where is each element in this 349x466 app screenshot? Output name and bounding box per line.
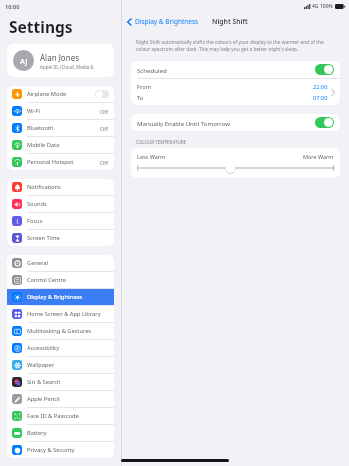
staticText: AJ	[20, 56, 28, 66]
staticText: Wallpaper	[27, 361, 55, 369]
button[interactable]: Bluetooth	[7, 120, 114, 136]
staticText: 22:00	[313, 83, 328, 91]
staticText: Home Screen & App Library	[27, 310, 101, 318]
staticText: Mobile Data	[27, 141, 60, 149]
button[interactable]: Accessibility	[7, 340, 114, 356]
button[interactable]: Toggle	[95, 90, 109, 98]
staticText: Less Warm	[137, 153, 166, 160]
staticText: Privacy & Security	[27, 446, 75, 454]
other: Back	[127, 18, 132, 26]
staticText: Face ID & Passcode	[27, 412, 79, 420]
staticText: Off	[100, 159, 109, 166]
button[interactable]: Personal Hotspot	[7, 154, 114, 170]
staticText: Display & Brightness	[135, 17, 199, 26]
staticText: Multitasking & Gestures	[27, 327, 92, 335]
staticText: 100%	[320, 3, 333, 10]
staticText: Night Shift	[212, 17, 248, 26]
button[interactable]: Mobile Data	[7, 137, 114, 153]
button[interactable]: Home Screen & App Library	[7, 306, 114, 322]
staticText: Display & Brightness	[27, 293, 83, 301]
button[interactable]: Sounds	[7, 196, 114, 212]
button[interactable]: Siri & Search	[7, 374, 114, 390]
staticText: Accessibility	[27, 344, 60, 352]
staticText: 10:00	[5, 3, 20, 11]
staticText: General	[27, 259, 48, 267]
button[interactable]: Back	[127, 17, 199, 26]
staticText: Settings	[9, 16, 73, 37]
staticText: Control Centre	[27, 276, 67, 284]
button[interactable]: Airplane Mode	[7, 86, 114, 102]
staticText: Bluetooth	[27, 124, 54, 132]
staticText: Alan Jones	[40, 52, 79, 63]
button[interactable]: Colour temperature slider	[137, 163, 334, 173]
button[interactable]: Toggle	[315, 117, 334, 128]
staticText: Sounds	[27, 200, 47, 208]
staticText: To	[137, 94, 144, 102]
button[interactable]: Battery	[7, 425, 114, 441]
staticText: Apple Pencil	[27, 395, 60, 403]
staticText: Off	[100, 125, 109, 132]
staticText: From	[137, 83, 151, 91]
staticText: Airplane Mode	[27, 90, 67, 98]
staticText: 07:00	[313, 94, 328, 102]
button[interactable]: Focus	[7, 213, 114, 229]
staticText: Siri & Search	[27, 378, 61, 386]
staticText: Personal Hotspot	[27, 158, 74, 166]
button[interactable]: Wi-Fi	[7, 103, 114, 119]
staticText: Screen Time	[27, 234, 60, 242]
button[interactable]: AJ	[7, 44, 114, 77]
button[interactable]: Manually Enable Until Tomorrow	[131, 114, 340, 131]
staticText: Wi-Fi	[27, 107, 41, 115]
staticText: Manually Enable Until Tomorrow	[137, 119, 231, 127]
button[interactable]: Toggle	[315, 64, 334, 75]
button[interactable]: From	[131, 79, 340, 105]
button[interactable]: Face ID & Passcode	[7, 408, 114, 424]
button[interactable]: Notifications	[7, 179, 114, 195]
staticText: Night Shift automatically shifts the col…	[136, 39, 333, 52]
button[interactable]: Display & Brightness	[7, 289, 114, 305]
button[interactable]: Privacy & Security	[7, 442, 114, 458]
staticText: Off	[100, 108, 109, 115]
button[interactable]: Wallpaper	[7, 357, 114, 373]
staticText: Scheduled	[137, 66, 167, 74]
staticText: Battery	[27, 429, 47, 437]
staticText: Notifications	[27, 183, 61, 191]
staticText: COLOUR TEMPERATURE	[136, 139, 187, 145]
staticText: More Warm	[303, 153, 334, 160]
button[interactable]: General	[7, 255, 114, 271]
button[interactable]: Control Centre	[7, 272, 114, 288]
button[interactable]: Scheduled	[131, 61, 340, 78]
staticText: Apple ID, iCloud, Media & Purchases	[40, 64, 108, 70]
staticText: Focus	[27, 217, 43, 225]
button[interactable]: Screen Time	[7, 230, 114, 246]
staticText: 4G	[312, 3, 319, 10]
button[interactable]: Apple Pencil	[7, 391, 114, 407]
button[interactable]: Multitasking & Gestures	[7, 323, 114, 339]
